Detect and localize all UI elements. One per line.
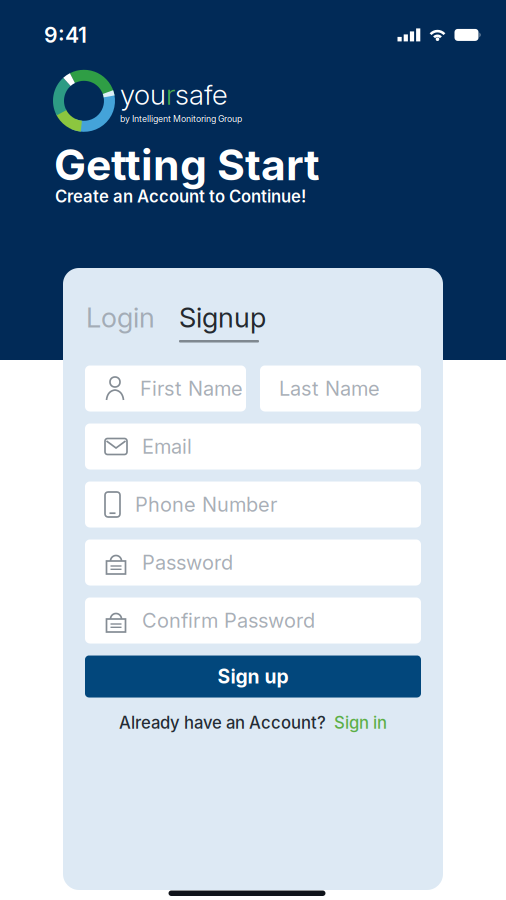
button[interactable]: Signup bbox=[179, 304, 266, 342]
staticText: safe bbox=[175, 78, 228, 111]
staticText: by Intelligent Monitoring Group bbox=[120, 113, 242, 124]
staticText: Login bbox=[86, 301, 155, 334]
button[interactable]: Confirm Password bbox=[85, 597, 421, 643]
staticText: r bbox=[166, 78, 175, 111]
staticText: Sign up bbox=[217, 665, 288, 688]
button[interactable]: Sign in bbox=[334, 712, 387, 733]
staticText: you bbox=[120, 78, 166, 111]
staticText: Signup bbox=[179, 301, 266, 334]
staticText: Already have an Account? bbox=[119, 712, 326, 733]
staticText: Last Name bbox=[279, 376, 380, 401]
button[interactable]: Password bbox=[85, 539, 421, 585]
button[interactable]: Phone Number bbox=[85, 481, 421, 527]
staticText: Sign in bbox=[334, 712, 387, 733]
staticText: Confirm Password bbox=[142, 608, 315, 633]
staticText: Phone Number bbox=[135, 492, 277, 517]
staticText: Email bbox=[142, 434, 192, 459]
button[interactable]: Login bbox=[86, 304, 155, 331]
staticText: First Name bbox=[140, 376, 243, 401]
staticText: 9:41 bbox=[44, 22, 87, 48]
staticText: Password bbox=[142, 550, 233, 575]
button[interactable]: First Name bbox=[85, 365, 246, 411]
button[interactable]: Sign up bbox=[85, 655, 421, 697]
button[interactable]: Email bbox=[85, 423, 421, 469]
button[interactable]: Last Name bbox=[260, 365, 421, 411]
staticText: Getting Start bbox=[54, 139, 320, 190]
staticText: Create an Account to Continue! bbox=[55, 186, 306, 207]
